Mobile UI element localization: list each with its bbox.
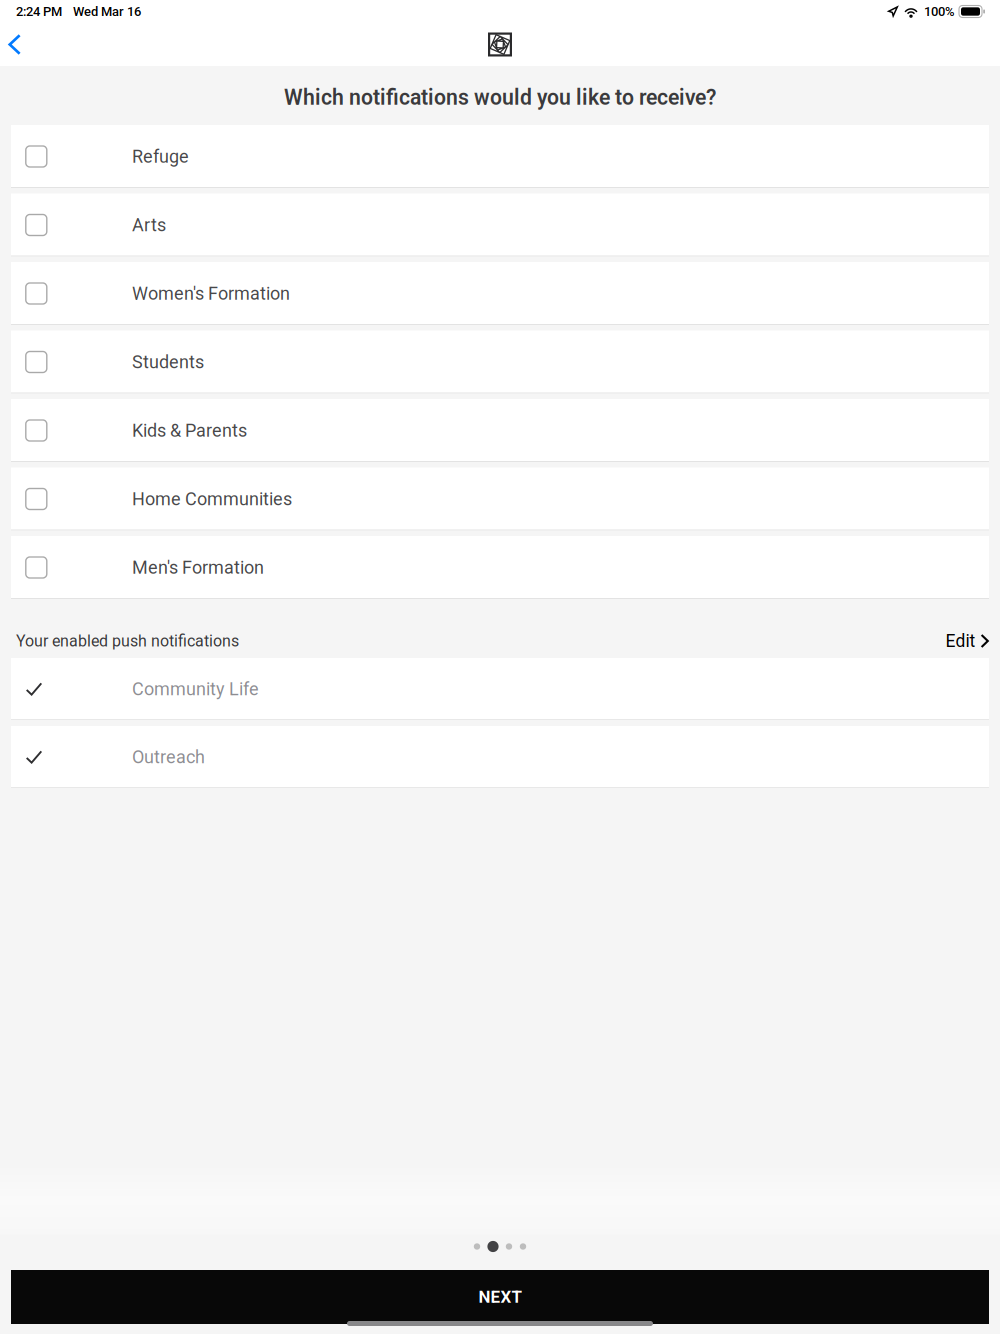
staticText: Which notifications would you like to re… (284, 85, 716, 110)
button[interactable]: Kids & Parents (11, 399, 989, 462)
button[interactable]: Back (0, 26, 37, 63)
staticText: Edit (945, 631, 975, 651)
staticText: 100% (924, 4, 955, 19)
staticText: Arts (132, 214, 166, 236)
staticText: Outreach (132, 746, 205, 768)
staticText: Men's Formation (132, 557, 264, 578)
button[interactable]: NEXT (11, 1270, 989, 1324)
button[interactable]: Community Life (11, 658, 989, 720)
button[interactable]: Refuge (11, 125, 989, 188)
staticText: 2:24 PM (16, 4, 62, 19)
button[interactable]: Home Communities (11, 467, 989, 530)
staticText: Your enabled push notifications (16, 632, 239, 650)
staticText: Refuge (132, 146, 189, 167)
staticText: Home Communities (132, 488, 292, 510)
staticText: Students (132, 351, 204, 373)
staticText: Kids & Parents (132, 420, 247, 441)
staticText: NEXT (478, 1287, 521, 1307)
staticText: Community Life (132, 678, 259, 700)
staticText: Women's Formation (132, 283, 290, 304)
button[interactable]: Students (11, 330, 989, 393)
button[interactable]: Arts (11, 193, 989, 256)
button[interactable]: Men's Formation (11, 536, 989, 599)
button[interactable]: Edit (933, 622, 989, 660)
button[interactable]: Outreach (11, 726, 989, 788)
button[interactable]: Women's Formation (11, 262, 989, 325)
staticText: Wed Mar 16 (73, 4, 141, 19)
